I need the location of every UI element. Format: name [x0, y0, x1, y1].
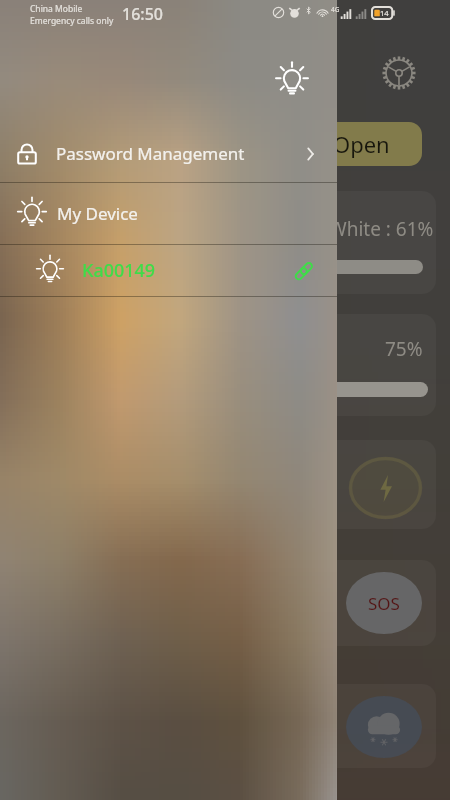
staticText: 16:50	[122, 3, 163, 25]
button[interactable]: Settings	[378, 52, 420, 94]
button[interactable]: Open	[300, 122, 422, 166]
staticText: 75%	[385, 336, 423, 362]
button[interactable]: Password Management	[0, 125, 337, 182]
staticText: Emergency calls only	[30, 15, 114, 27]
staticText: 14	[380, 8, 389, 18]
button[interactable]: My Device	[0, 183, 337, 244]
button[interactable]: Flash	[349, 457, 422, 519]
button[interactable]: SOS	[346, 572, 422, 634]
staticText: 4G	[331, 5, 340, 14]
button[interactable]: Ka00149	[0, 245, 337, 296]
staticText: SOS	[368, 592, 400, 615]
staticText: China Mobile	[30, 3, 83, 15]
button[interactable]: Snow	[346, 696, 422, 758]
staticText: Ka00149	[82, 258, 156, 283]
staticText: Password Management	[56, 142, 245, 165]
staticText: My Device	[57, 202, 138, 225]
button[interactable]: Brightness	[268, 57, 315, 104]
staticText: Open	[333, 129, 390, 159]
staticText: White : 61%	[329, 216, 434, 242]
